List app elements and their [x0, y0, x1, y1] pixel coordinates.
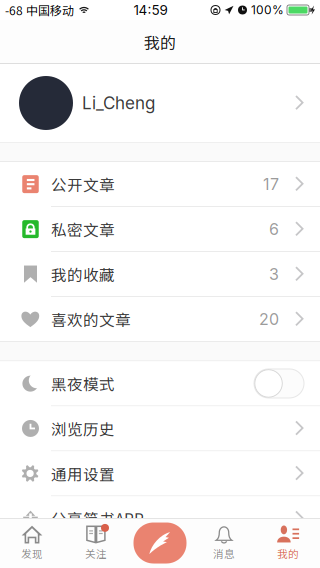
button[interactable]: 我的: [256, 518, 320, 568]
button[interactable]: 关注: [64, 518, 128, 568]
staticText: 私密文章: [51, 218, 115, 240]
staticText: 关注: [85, 546, 107, 561]
staticText: 浏览历史: [51, 417, 115, 440]
staticText: 20: [259, 309, 279, 329]
button[interactable]: 发现: [0, 518, 64, 568]
button[interactable]: 消息: [192, 518, 256, 568]
button[interactable]: 私密文章: [0, 207, 320, 251]
staticText: 100%: [251, 3, 284, 17]
staticText: 我的: [144, 30, 176, 54]
staticText: Li_Cheng: [82, 93, 155, 113]
staticText: 我的收藏: [51, 263, 115, 285]
button[interactable]: 喜欢的文章: [0, 297, 320, 341]
button[interactable]: 黑夜模式: [254, 369, 304, 398]
staticText: 消息: [213, 546, 235, 561]
button[interactable]: Li_Cheng: [0, 64, 320, 142]
button[interactable]: 我的收藏: [0, 252, 320, 296]
button[interactable]: 写文章: [133, 522, 186, 563]
staticText: 我的: [277, 546, 299, 561]
staticText: 通用设置: [51, 462, 115, 485]
staticText: 分享简书APP: [51, 507, 144, 530]
staticText: 喜欢的文章: [51, 308, 131, 330]
staticText: 黑夜模式: [51, 372, 115, 395]
button[interactable]: 浏览历史: [0, 406, 320, 451]
staticText: 发现: [21, 546, 43, 561]
staticText: 14:59: [133, 2, 167, 18]
button[interactable]: 公开文章: [0, 162, 320, 206]
button[interactable]: 通用设置: [0, 451, 320, 496]
staticText: 公开文章: [51, 173, 115, 195]
staticText: 3: [269, 264, 279, 284]
staticText: 6: [269, 219, 279, 239]
button[interactable]: 分享简书APP: [0, 496, 320, 541]
staticText: -68 中国移动: [5, 1, 74, 19]
staticText: 17: [263, 174, 279, 194]
